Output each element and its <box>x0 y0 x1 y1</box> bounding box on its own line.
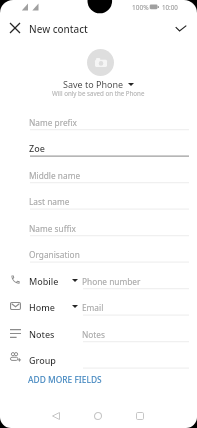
button[interactable]: Name prefix <box>0 110 197 130</box>
button[interactable]: Mobile <box>0 269 197 289</box>
button[interactable]: Group <box>0 348 197 368</box>
button[interactable]: Name suffix <box>0 216 197 236</box>
staticText: ADD MORE FIELDS <box>28 374 102 385</box>
button[interactable]: Recent apps <box>130 406 150 426</box>
button[interactable]: Notes <box>0 322 197 342</box>
button[interactable]: Middle name <box>0 163 197 183</box>
staticText: Notes <box>82 329 105 340</box>
staticText: Last name <box>29 196 70 207</box>
staticText: 10:00 <box>162 3 178 11</box>
staticText: Save to Phone <box>63 78 124 90</box>
button[interactable]: Save contact <box>169 16 193 40</box>
staticText: Name prefix <box>29 117 77 128</box>
button[interactable]: Organisation <box>0 242 197 262</box>
button[interactable]: Zoe <box>0 136 197 156</box>
button[interactable]: Back <box>46 406 66 426</box>
staticText: Group <box>29 354 56 366</box>
staticText: Will only be saved on the Phone <box>52 89 145 97</box>
button[interactable]: Save to Phone <box>63 78 134 90</box>
button[interactable]: Home <box>88 406 108 426</box>
button[interactable]: Home <box>0 295 197 315</box>
staticText: 100% <box>132 3 149 12</box>
button[interactable]: Last name <box>0 189 197 209</box>
staticText: Middle name <box>29 170 81 181</box>
button[interactable]: Add photo <box>87 49 114 76</box>
staticText: Name suffix <box>29 223 76 234</box>
staticText: Organisation <box>29 249 80 260</box>
staticText: Notes <box>29 328 55 340</box>
button[interactable]: Close <box>3 16 27 40</box>
staticText: Mobile <box>29 275 59 287</box>
staticText: Home <box>29 301 55 313</box>
staticText: Phone number <box>82 276 141 287</box>
button[interactable]: ADD MORE FIELDS <box>0 371 197 387</box>
staticText: Email <box>82 302 104 313</box>
staticText: New contact <box>29 22 88 35</box>
staticText: Zoe <box>29 142 45 154</box>
